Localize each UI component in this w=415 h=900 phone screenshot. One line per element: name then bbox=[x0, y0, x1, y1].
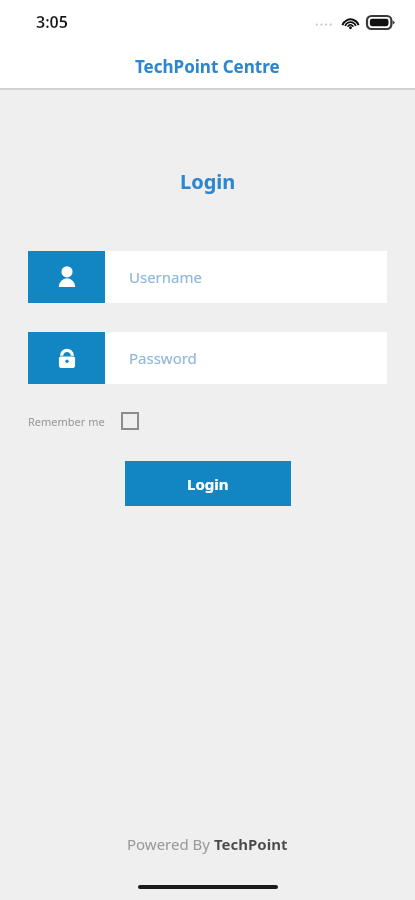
staticText: Powered By bbox=[127, 834, 214, 854]
button[interactable]: Remember me bbox=[28, 408, 139, 434]
button[interactable]: Username bbox=[28, 251, 387, 303]
staticText: Login bbox=[187, 474, 229, 494]
staticText: Username bbox=[129, 267, 202, 287]
staticText: Login bbox=[180, 168, 236, 195]
staticText: Remember me bbox=[28, 414, 105, 429]
staticText: 3:05 bbox=[36, 11, 68, 33]
button[interactable]: Password bbox=[28, 332, 387, 384]
staticText: TechPoint Centre bbox=[135, 55, 280, 78]
staticText: TechPoint bbox=[214, 834, 288, 854]
other: Password bbox=[28, 332, 105, 384]
staticText: Password bbox=[129, 348, 197, 368]
button[interactable]: Login bbox=[125, 461, 291, 506]
other: Username bbox=[28, 251, 105, 303]
